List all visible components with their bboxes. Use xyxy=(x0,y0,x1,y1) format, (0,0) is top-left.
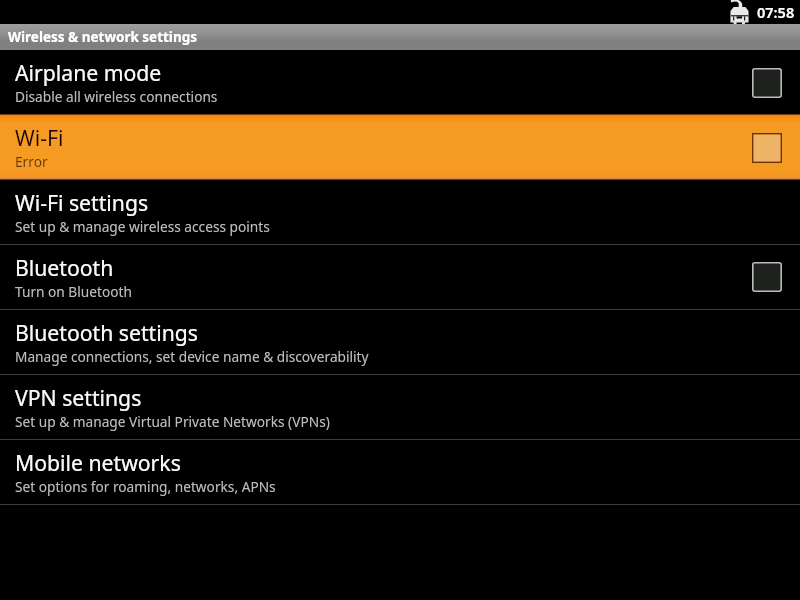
staticText: VPN settings xyxy=(15,383,142,412)
button[interactable]: Wi-Fi settings xyxy=(0,181,800,244)
staticText: Wi-Fi settings xyxy=(15,188,149,217)
staticText: Set up & manage wireless access points xyxy=(15,217,270,236)
staticText: Bluetooth xyxy=(15,253,114,282)
staticText: Airplane mode xyxy=(15,58,162,87)
staticText: Mobile networks xyxy=(15,448,181,477)
staticText: Turn on Bluetooth xyxy=(15,282,132,301)
button[interactable]: Wi-Fi xyxy=(752,133,782,163)
staticText: Set options for roaming, networks, APNs xyxy=(15,477,276,496)
button[interactable]: VPN settings xyxy=(0,375,800,439)
button[interactable]: Airplane mode xyxy=(0,50,800,115)
button[interactable]: Airplane mode xyxy=(752,68,782,98)
button[interactable]: Wireless & network settings xyxy=(0,24,800,50)
button[interactable]: Wi-Fi xyxy=(0,115,800,181)
staticText: Set up & manage Virtual Private Networks… xyxy=(15,412,330,431)
other: USB connected xyxy=(729,1,750,24)
staticText: Wireless & network settings xyxy=(8,28,197,46)
staticText: Bluetooth settings xyxy=(15,318,198,347)
staticText: Manage connections, set device name & di… xyxy=(15,347,369,366)
button[interactable]: Bluetooth xyxy=(0,245,800,309)
staticText: 07:58 xyxy=(757,2,795,22)
button[interactable]: Bluetooth settings xyxy=(0,310,800,374)
staticText: Disable all wireless connections xyxy=(15,87,218,106)
button[interactable]: Mobile networks xyxy=(0,440,800,504)
button[interactable]: Bluetooth xyxy=(752,262,782,292)
staticText: Wi-Fi xyxy=(15,123,64,152)
staticText: Error xyxy=(15,152,48,171)
